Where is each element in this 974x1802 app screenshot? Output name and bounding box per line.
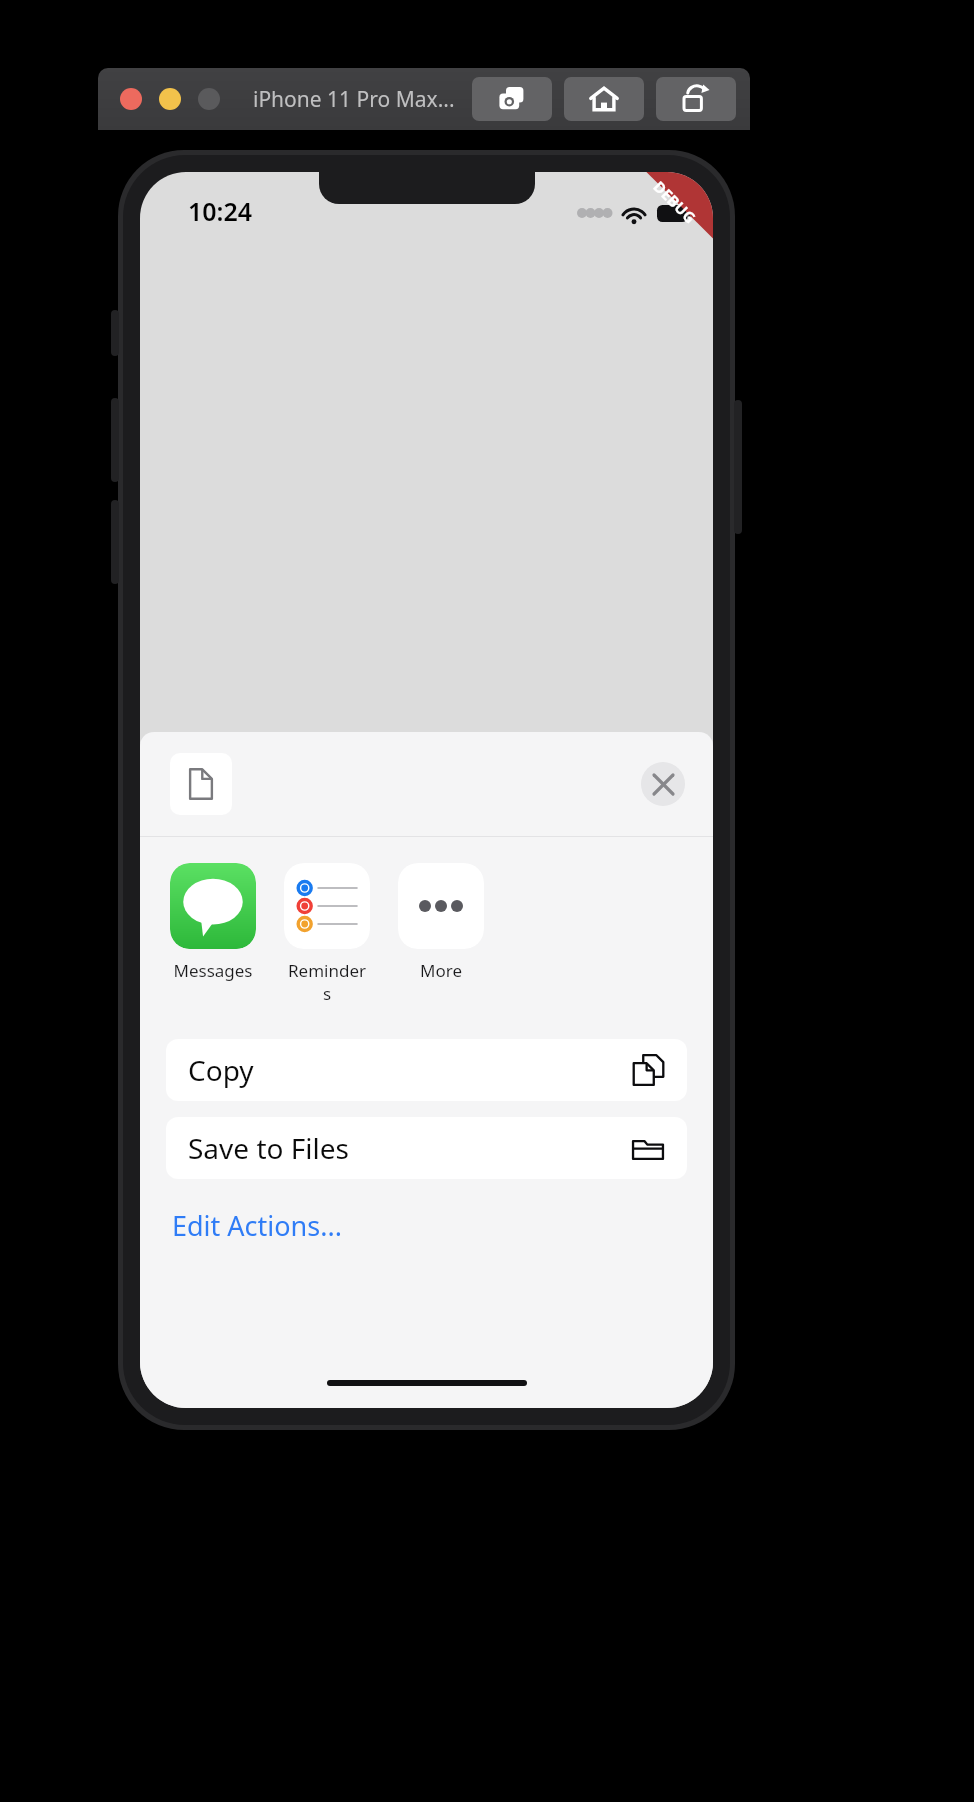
- button[interactable]: Messages: [170, 863, 256, 982]
- button[interactable]: Minimize: [159, 88, 181, 110]
- staticText: DEBUG: [649, 176, 700, 227]
- staticText: Save to Files: [188, 1129, 349, 1167]
- button[interactable]: Document preview: [170, 753, 232, 815]
- button[interactable]: More: [398, 863, 484, 982]
- staticText: Reminders: [284, 959, 370, 1005]
- button[interactable]: Save to Files: [166, 1117, 687, 1179]
- staticText: Copy: [188, 1051, 254, 1089]
- button[interactable]: Edit Actions...: [172, 1207, 342, 1244]
- staticText: 10:24: [188, 194, 253, 228]
- button[interactable]: Rotate: [656, 77, 736, 121]
- staticText: iPhone 11 Pro Max...: [253, 85, 455, 114]
- button[interactable]: Home: [564, 77, 644, 121]
- button[interactable]: Zoom: [198, 88, 220, 110]
- staticText: Messages: [173, 959, 253, 982]
- staticText: More: [420, 959, 462, 982]
- button[interactable]: Close: [641, 762, 685, 806]
- button[interactable]: Reminders: [284, 863, 370, 1005]
- button[interactable]: Screenshot: [472, 77, 552, 121]
- button[interactable]: Copy: [166, 1039, 687, 1101]
- staticText: Edit Actions...: [172, 1207, 342, 1244]
- button[interactable]: Close: [120, 88, 142, 110]
